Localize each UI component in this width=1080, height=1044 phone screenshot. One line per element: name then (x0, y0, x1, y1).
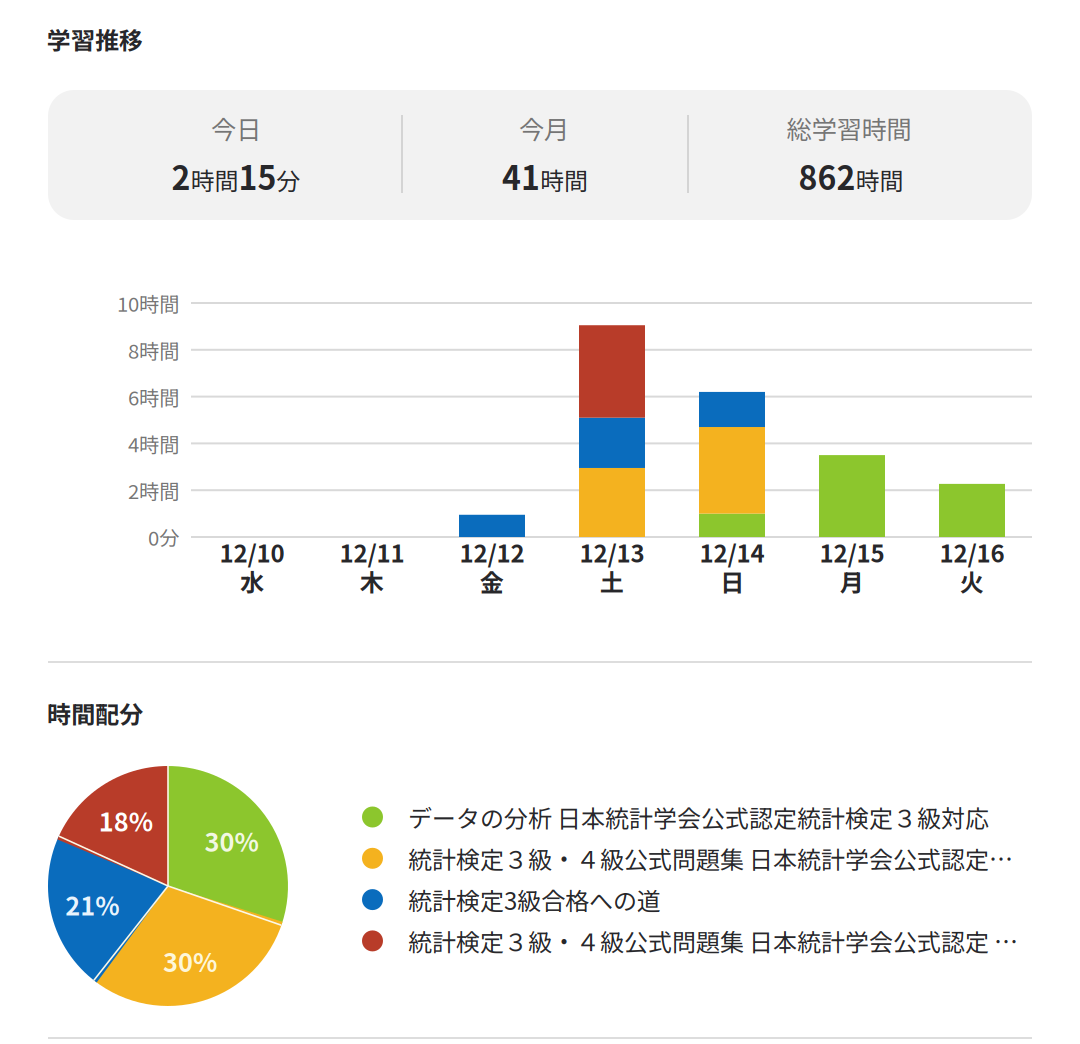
staticText: 12/15 (819, 535, 884, 569)
staticText: 41 (502, 153, 540, 199)
staticText: 統計検定３級・４級公式問題集 日本統計学会公式認定 … (408, 923, 1018, 958)
staticText: 時間 (190, 162, 238, 197)
staticText: 土 (600, 564, 624, 598)
staticText: 学習推移 (47, 22, 143, 56)
staticText: 6時間 (128, 382, 179, 411)
staticText: 12/10 (219, 535, 284, 569)
staticText: 月 (840, 564, 864, 598)
staticText: 木 (360, 564, 384, 598)
button[interactable]: データの分析 日本統計学会公式認定統計検定３級対応 (362, 798, 1034, 836)
staticText: 862 (798, 153, 855, 199)
staticText: 今日 (211, 110, 261, 146)
staticText: 水 (240, 564, 264, 598)
staticText: 日 (720, 564, 744, 598)
staticText: データの分析 日本統計学会公式認定統計検定３級対応 (408, 800, 989, 834)
button[interactable]: 統計検定3級合格への道 (362, 881, 1034, 919)
staticText: 2時間 (128, 475, 179, 505)
button[interactable]: 総学習時間 (711, 105, 991, 205)
button[interactable]: 今月 (405, 105, 685, 205)
button[interactable]: 統計検定３級・４級公式問題集 日本統計学会公式認定 … (362, 922, 1034, 960)
staticText: 時間 (540, 162, 588, 197)
staticText: 2 (171, 153, 190, 199)
staticText: 18% (99, 802, 153, 839)
staticText: 12/12 (459, 535, 524, 569)
staticText: 10時間 (117, 288, 179, 318)
staticText: 火 (960, 564, 984, 598)
staticText: 12/11 (339, 535, 404, 569)
staticText: 21% (65, 886, 119, 923)
staticText: 統計検定３級・４級公式問題集 日本統計学会公式認定… (408, 841, 1013, 876)
staticText: 金 (480, 564, 504, 598)
staticText: 30% (204, 822, 258, 859)
staticText: 12/13 (579, 535, 644, 569)
staticText: 時間配分 (47, 696, 143, 730)
staticText: 15 (238, 153, 276, 199)
staticText: 統計検定3級合格への道 (408, 882, 661, 917)
staticText: 30% (163, 942, 217, 979)
staticText: 総学習時間 (786, 110, 911, 146)
staticText: 今月 (519, 110, 569, 146)
button[interactable]: 今日 (96, 105, 376, 205)
staticText: 時間 (855, 162, 903, 197)
staticText: 分 (276, 162, 300, 197)
staticText: 4時間 (128, 429, 179, 458)
staticText: 12/16 (939, 535, 1004, 569)
staticText: 0分 (148, 522, 179, 552)
staticText: 8時間 (128, 335, 179, 364)
staticText: 12/14 (699, 535, 764, 569)
button[interactable]: 統計検定３級・４級公式問題集 日本統計学会公式認定… (362, 839, 1034, 877)
